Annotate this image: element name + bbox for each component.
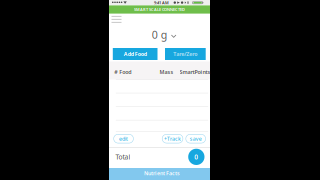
staticText: # Food bbox=[114, 68, 131, 76]
button[interactable]: Open menu bbox=[109, 0, 129, 15]
staticText: 9:41 AM bbox=[154, 0, 169, 5]
staticText: edit bbox=[119, 135, 128, 142]
button[interactable]: Add Food bbox=[113, 48, 157, 60]
button[interactable]: +Track bbox=[162, 134, 183, 143]
staticText: Total bbox=[115, 153, 130, 161]
button[interactable]: edit bbox=[114, 134, 133, 143]
staticText: Tare/Zero bbox=[173, 50, 197, 58]
staticText: save bbox=[190, 135, 202, 142]
button[interactable]: save bbox=[186, 134, 206, 143]
staticText: +Track bbox=[164, 135, 181, 142]
staticText: 0 bbox=[194, 152, 198, 161]
staticText: Mass bbox=[159, 68, 173, 76]
button[interactable]: Tare/Zero bbox=[165, 48, 206, 60]
staticText: Nutrient Facts bbox=[144, 170, 180, 177]
staticText: Add Food bbox=[124, 50, 147, 58]
staticText: 0 g bbox=[152, 27, 168, 42]
button[interactable]: Nutrient Facts bbox=[109, 168, 210, 180]
staticText: SmartPoints bbox=[179, 68, 210, 76]
staticText: SMART SCALE CONNECTED bbox=[134, 7, 185, 12]
